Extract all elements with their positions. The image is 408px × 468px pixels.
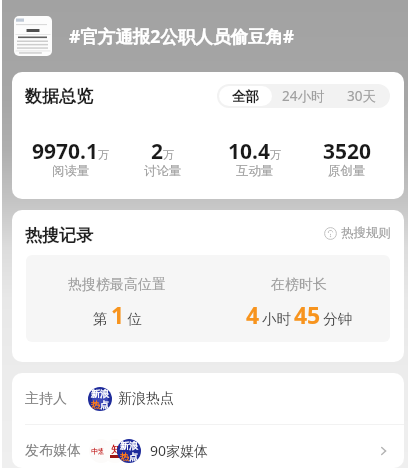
- staticText: 点: [129, 451, 138, 462]
- button[interactable]: 全部: [217, 84, 274, 108]
- button[interactable]: 发布媒体: [12, 425, 404, 468]
- staticText: 4 小时 45 分钟: [246, 299, 353, 330]
- button[interactable]: 30天: [332, 84, 390, 108]
- staticText: 新浪: [120, 440, 138, 451]
- staticText: 热: [120, 451, 129, 462]
- staticText: 数据总览: [25, 86, 93, 107]
- staticText: 中宏网: [91, 447, 112, 456]
- staticText: 原创量: [328, 163, 366, 179]
- staticText: 讨论量: [144, 163, 182, 179]
- staticText: 全部: [232, 88, 259, 105]
- staticText: 新浪: [91, 388, 109, 399]
- staticText: #官方通报2公职人员偷豆角#: [69, 24, 295, 48]
- staticText: 在榜时长: [271, 276, 327, 294]
- staticText: 10.4万: [228, 137, 282, 166]
- staticText: 30天: [347, 87, 376, 105]
- button[interactable]: 热搜规则: [324, 225, 391, 241]
- button[interactable]: 24小时: [274, 84, 332, 108]
- staticText: 第 1 位: [93, 299, 142, 330]
- staticText: 90家媒体: [150, 441, 209, 460]
- staticText: 热搜规则: [341, 225, 391, 241]
- staticText: 热搜榜最高位置: [68, 276, 166, 294]
- staticText: 2万: [151, 137, 175, 166]
- staticText: 新浪热点: [118, 390, 174, 408]
- staticText: 24小时: [282, 87, 325, 105]
- button[interactable]: 主持人: [12, 373, 404, 424]
- staticText: 热搜记录: [25, 225, 93, 246]
- staticText: 3520: [323, 137, 372, 166]
- staticText: 9970.1万: [32, 137, 110, 166]
- staticText: 互动量: [236, 163, 274, 179]
- other: More: [377, 444, 391, 458]
- staticText: 阅读量: [52, 163, 90, 179]
- staticText: 发布媒体: [25, 442, 81, 460]
- staticText: 点: [100, 399, 109, 410]
- staticText: 主持人: [25, 390, 67, 408]
- staticText: 热: [91, 399, 100, 410]
- staticText: 知: [111, 443, 121, 456]
